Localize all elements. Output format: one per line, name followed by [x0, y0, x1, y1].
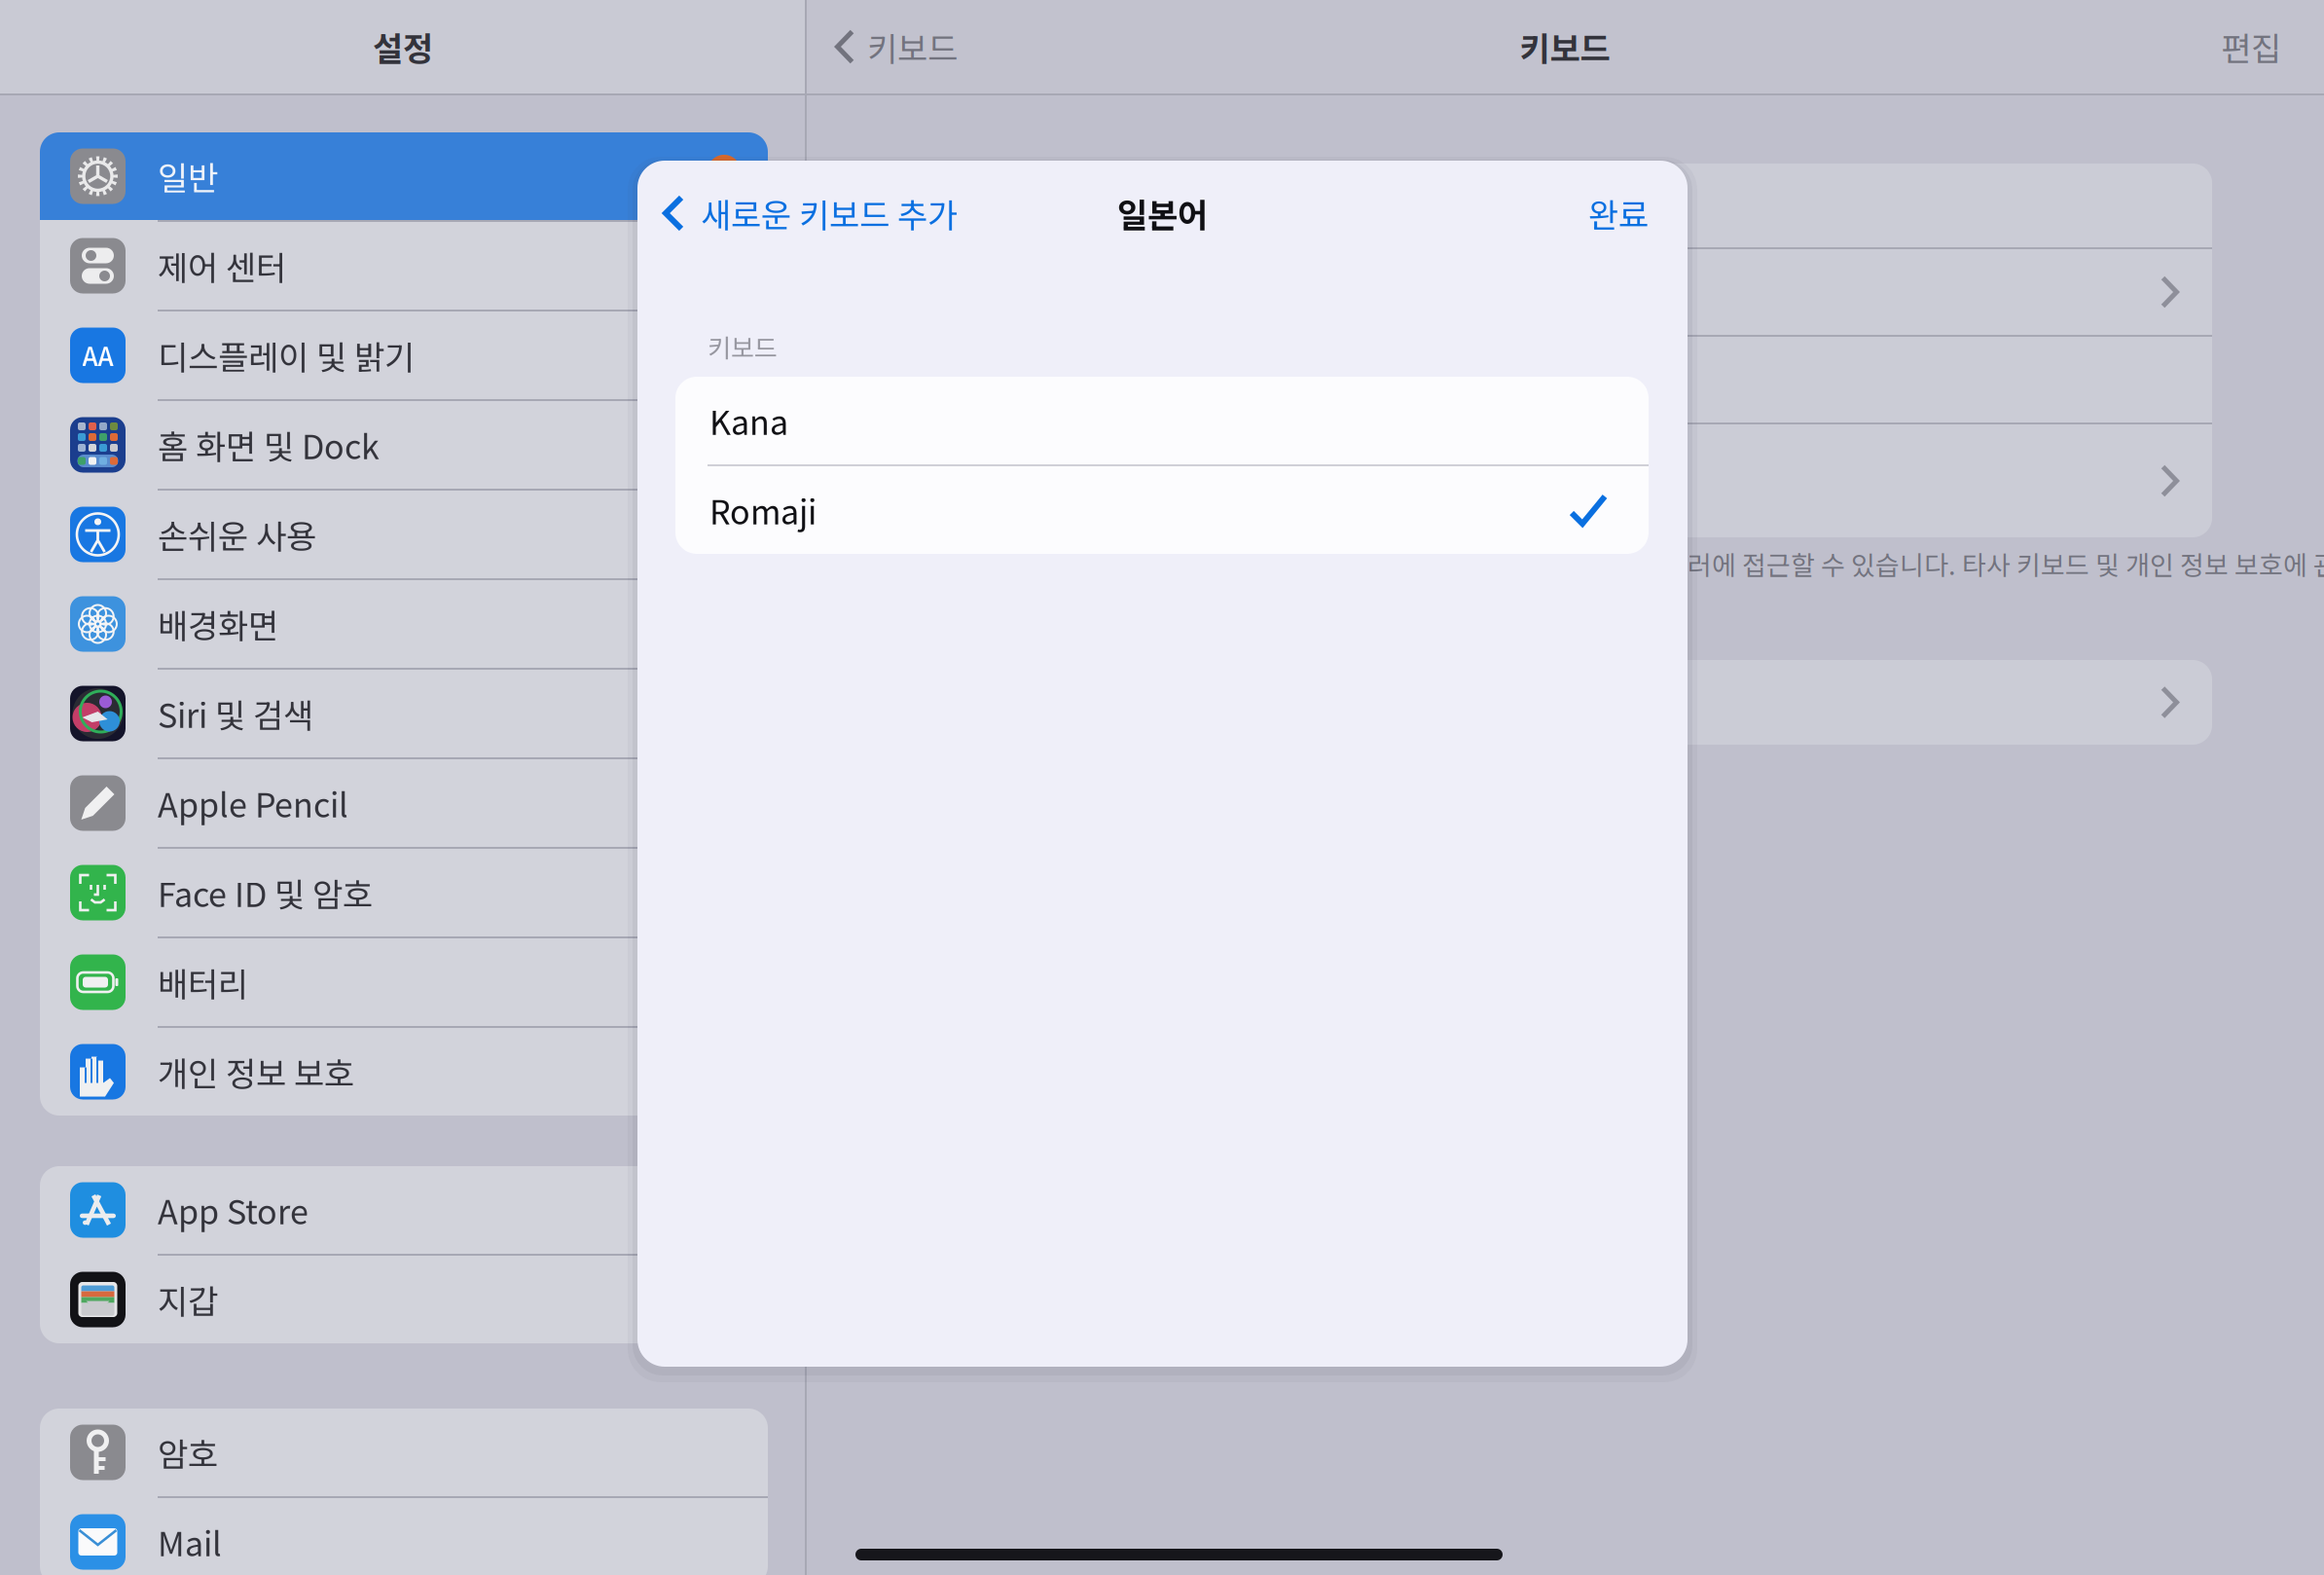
button[interactable]: AA — [40, 311, 768, 399]
button[interactable]: Romaji — [675, 466, 1649, 554]
button[interactable]: 텍스트 대치 — [839, 424, 2212, 537]
staticText: 손쉬운 사용 — [158, 510, 316, 558]
staticText: Apple Pencil — [158, 779, 348, 827]
staticText: 제어 센터 — [158, 242, 286, 290]
button[interactable]: 편집 — [2221, 0, 2324, 93]
staticText: 설정 — [373, 23, 433, 71]
staticText: 키보드 — [1520, 23, 1610, 71]
staticText: Face ID 및 암호 — [158, 869, 373, 917]
staticText: 편집 — [2221, 23, 2281, 71]
staticText: 암호 — [158, 1428, 218, 1476]
staticText: Mail — [158, 1518, 222, 1566]
staticText: 러에 접근할 수 있습니다. 타사 키보드 및 개인 정보 보호에 관하여 — [1688, 545, 2324, 583]
button[interactable]: Siri 및 검색 — [40, 670, 768, 757]
button[interactable]: 일반 — [40, 132, 768, 220]
button[interactable]: 새로운 키보드 추가 — [637, 161, 958, 266]
staticText: 지갑 — [158, 1276, 218, 1323]
button[interactable]: 제어 센터 — [40, 222, 768, 310]
button[interactable]: 배터리 — [40, 938, 768, 1026]
button[interactable]: 완료 — [1588, 161, 1688, 266]
staticText: 새로운 키보드 추가 — [701, 189, 958, 237]
button[interactable]: 손쉬운 사용 — [40, 491, 768, 578]
staticText: 개인 정보 보호 — [158, 1048, 354, 1096]
button[interactable]: Kana — [675, 377, 1649, 464]
button[interactable]: 키보드 — [839, 249, 2212, 335]
button[interactable]: Apple Pencil — [40, 759, 768, 847]
staticText: App Store — [158, 1186, 309, 1234]
button[interactable]: Mail — [40, 1498, 768, 1575]
staticText: 일본어 — [1117, 189, 1208, 237]
staticText: 배터리 — [158, 958, 248, 1006]
staticText: Siri 및 검색 — [158, 690, 313, 737]
staticText: 일반 — [158, 152, 218, 200]
button[interactable]: 배경화면 — [40, 580, 768, 668]
staticText: AA — [82, 337, 113, 374]
staticText: Kana — [709, 397, 788, 444]
staticText: 홈 화면 및 Dock — [158, 421, 380, 469]
staticText: 키보드 — [867, 23, 958, 71]
button[interactable]: 키보드 — [806, 0, 958, 93]
staticText: 배경화면 — [158, 600, 278, 648]
staticText: 키보드 — [708, 328, 778, 365]
staticText: Romaji — [709, 486, 817, 534]
button[interactable]: App Store — [40, 1166, 768, 1254]
button[interactable]: 홈 화면 및 Dock — [40, 401, 768, 489]
staticText: 디스플레이 및 밝기 — [158, 331, 415, 379]
staticText: 완료 — [1588, 189, 1649, 237]
button[interactable]: 개인 정보 보호 — [40, 1028, 768, 1116]
button[interactable]: 지갑 — [40, 1256, 768, 1343]
button[interactable]: Face ID 및 암호 — [40, 849, 768, 936]
button[interactable]: 한손 키보드 — [839, 660, 2212, 745]
button[interactable]: 암호 — [40, 1409, 768, 1496]
